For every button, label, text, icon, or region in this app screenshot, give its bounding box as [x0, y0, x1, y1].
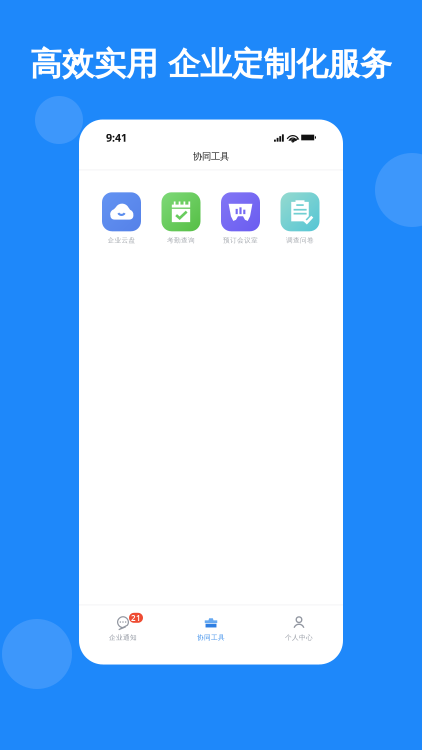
staticText: 9:41 — [106, 130, 127, 145]
button[interactable]: 调查问卷 — [270, 192, 330, 244]
staticText: 考勤查询 — [167, 236, 195, 244]
button[interactable]: 企业云盘 — [92, 192, 151, 244]
button[interactable]: 考勤查询 — [151, 192, 211, 244]
button[interactable]: 21 — [79, 616, 167, 641]
staticText: 21 — [131, 612, 141, 623]
staticText: 预订会议室 — [223, 236, 258, 244]
button[interactable]: 预订会议室 — [211, 192, 270, 244]
staticText: 协同工具 — [193, 151, 229, 162]
button[interactable]: 协同工具 — [167, 616, 255, 641]
staticText: 高效实用 企业定制化服务 — [30, 44, 392, 84]
staticText: 企业云盘 — [107, 236, 135, 244]
staticText: 调查问卷 — [286, 236, 314, 244]
staticText: 个人中心 — [285, 633, 313, 641]
staticText: 协同工具 — [197, 633, 225, 641]
staticText: 企业通知 — [109, 633, 137, 641]
button[interactable]: 个人中心 — [255, 616, 343, 641]
